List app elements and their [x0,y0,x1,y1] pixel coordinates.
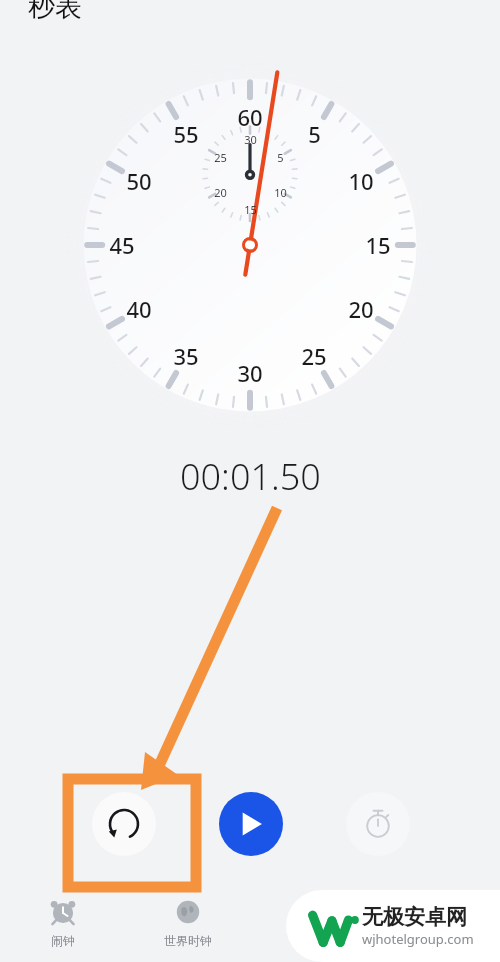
staticText: 20 [214,185,227,200]
staticText: 45 [109,230,135,260]
staticText: 25 [214,150,227,165]
staticText: 20 [348,294,374,324]
staticText: 30 [244,132,257,147]
staticText: 35 [173,341,199,371]
staticText: 25 [301,341,327,371]
button[interactable]: Start [219,792,283,856]
staticText: 无极安卓网 [362,904,467,930]
staticText: 10 [348,166,374,196]
staticText: 5 [308,119,321,149]
staticText: 55 [173,119,199,149]
button[interactable]: 计时器 [375,888,500,948]
staticText: 10 [274,185,287,200]
staticText: 60 [237,102,263,132]
button[interactable]: 世界时钟 [125,888,250,948]
staticText: 50 [126,166,152,196]
staticText: 40 [126,294,152,324]
staticText: 15 [365,230,391,260]
staticText: 00:01.50 [180,452,321,501]
staticText: 世界时钟 [164,933,212,948]
staticText: 闹钟 [51,933,75,948]
staticText: 30 [237,358,263,388]
staticText: wjhotelgroup.com [362,930,474,948]
staticText: 秒表 [28,0,82,24]
staticText: 秒表 [301,933,325,948]
button[interactable]: 闹钟 [0,888,125,948]
button[interactable]: Lap [346,792,410,856]
staticText: 15 [244,202,257,217]
staticText: 计时器 [420,933,456,948]
button[interactable]: Reset [92,792,156,856]
staticText: 5 [277,150,284,165]
button[interactable]: 秒表 [250,888,375,948]
